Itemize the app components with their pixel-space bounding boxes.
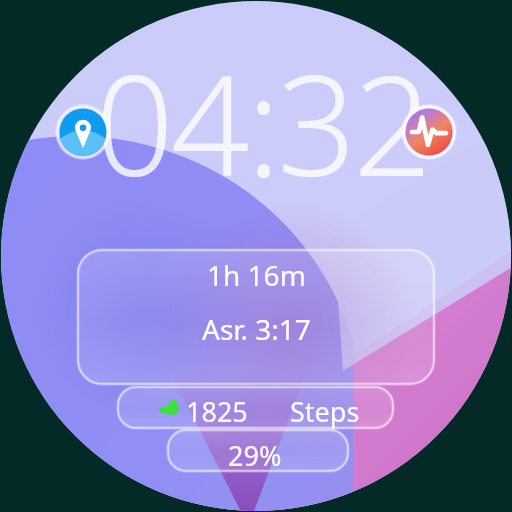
other: Steps: [158, 398, 180, 416]
button[interactable]: [118, 387, 393, 428]
staticText: 04:32: [95, 28, 429, 216]
button[interactable]: 04:32: [0, 0, 512, 512]
button[interactable]: [168, 430, 348, 471]
staticText: Steps: [290, 393, 360, 430]
staticText: 1h 16m: [207, 256, 306, 294]
button[interactable]: Location: [55, 104, 111, 160]
staticText: 29%: [228, 437, 282, 474]
button[interactable]: Heart rate: [401, 104, 457, 160]
staticText: 1825: [186, 393, 248, 430]
staticText: Asr. 3:17: [202, 310, 311, 348]
